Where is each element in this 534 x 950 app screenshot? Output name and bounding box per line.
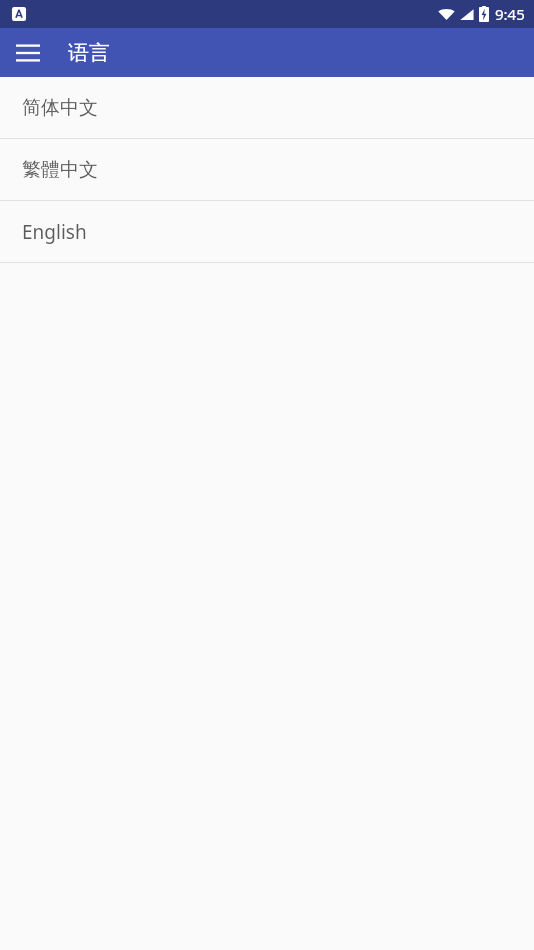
staticText: 9:45	[495, 4, 525, 24]
button[interactable]: 简体中文	[0, 77, 534, 138]
staticText: 简体中文	[22, 96, 98, 120]
button[interactable]: Open navigation menu	[8, 33, 48, 73]
staticText: 繁體中文	[22, 158, 98, 182]
staticText: English	[22, 219, 87, 245]
button[interactable]: English	[0, 201, 534, 262]
staticText: 语言	[68, 40, 110, 66]
button[interactable]: 繁體中文	[0, 139, 534, 200]
